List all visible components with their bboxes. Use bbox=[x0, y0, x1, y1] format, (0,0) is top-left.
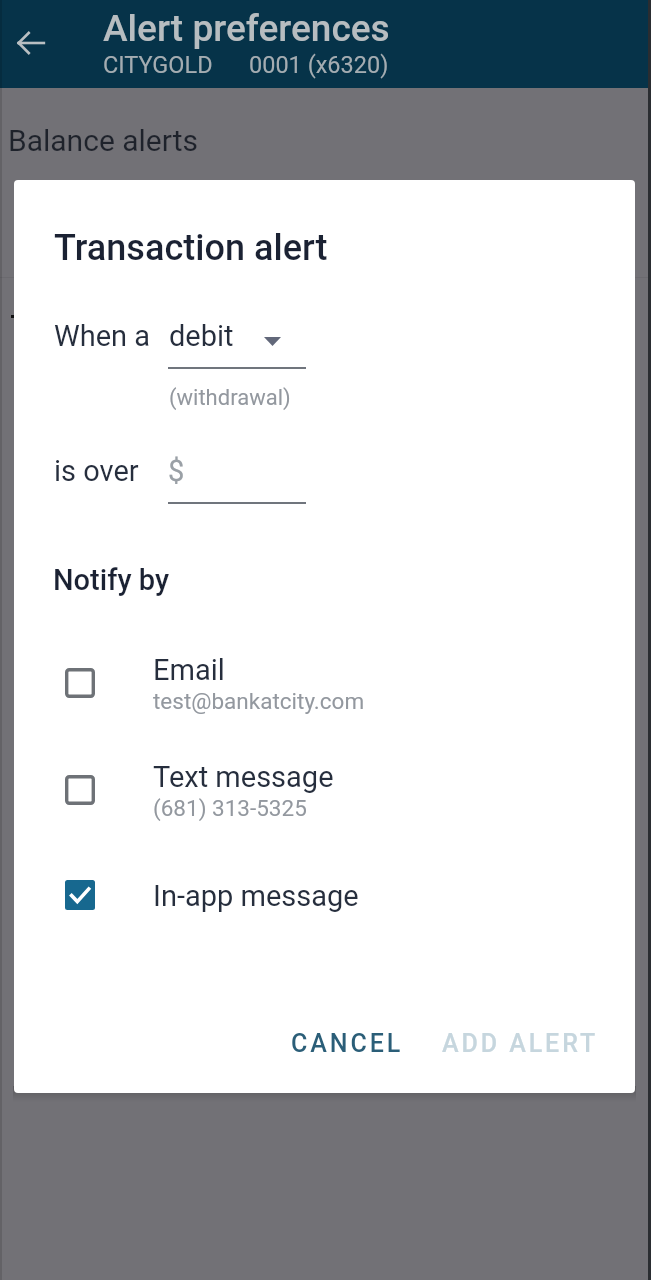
staticText: ADD ALERT bbox=[442, 1029, 599, 1058]
staticText: When a bbox=[54, 319, 151, 353]
staticText: Balance alerts bbox=[8, 123, 198, 158]
staticText: Notify by bbox=[53, 563, 170, 597]
button[interactable]: Select transaction type bbox=[249, 318, 295, 364]
staticText: test@bankatcity.com bbox=[153, 688, 365, 714]
staticText: 0001 (x6320) bbox=[249, 51, 389, 79]
staticText: is over bbox=[54, 454, 139, 488]
staticText: (withdrawal) bbox=[169, 385, 291, 411]
staticText: Email bbox=[153, 653, 225, 687]
button[interactable]: In-app message bbox=[40, 866, 595, 924]
button[interactable]: Back bbox=[3, 15, 59, 71]
staticText: CANCEL bbox=[291, 1029, 404, 1058]
button[interactable]: Text message bbox=[40, 761, 595, 843]
staticText: In-app message bbox=[153, 879, 359, 913]
button[interactable]: Email bbox=[40, 654, 595, 736]
button[interactable]: CANCEL bbox=[275, 1015, 420, 1072]
staticText: CITYGOLD bbox=[103, 51, 213, 79]
staticText: (681) 313-5325 bbox=[153, 795, 307, 821]
button[interactable]: ADD ALERT bbox=[426, 1015, 615, 1072]
staticText: $ bbox=[168, 454, 185, 488]
staticText: Transaction alert bbox=[54, 227, 328, 269]
staticText: Text message bbox=[153, 760, 334, 794]
staticText: Alert preferences bbox=[103, 7, 390, 50]
staticText: debit bbox=[169, 319, 234, 353]
